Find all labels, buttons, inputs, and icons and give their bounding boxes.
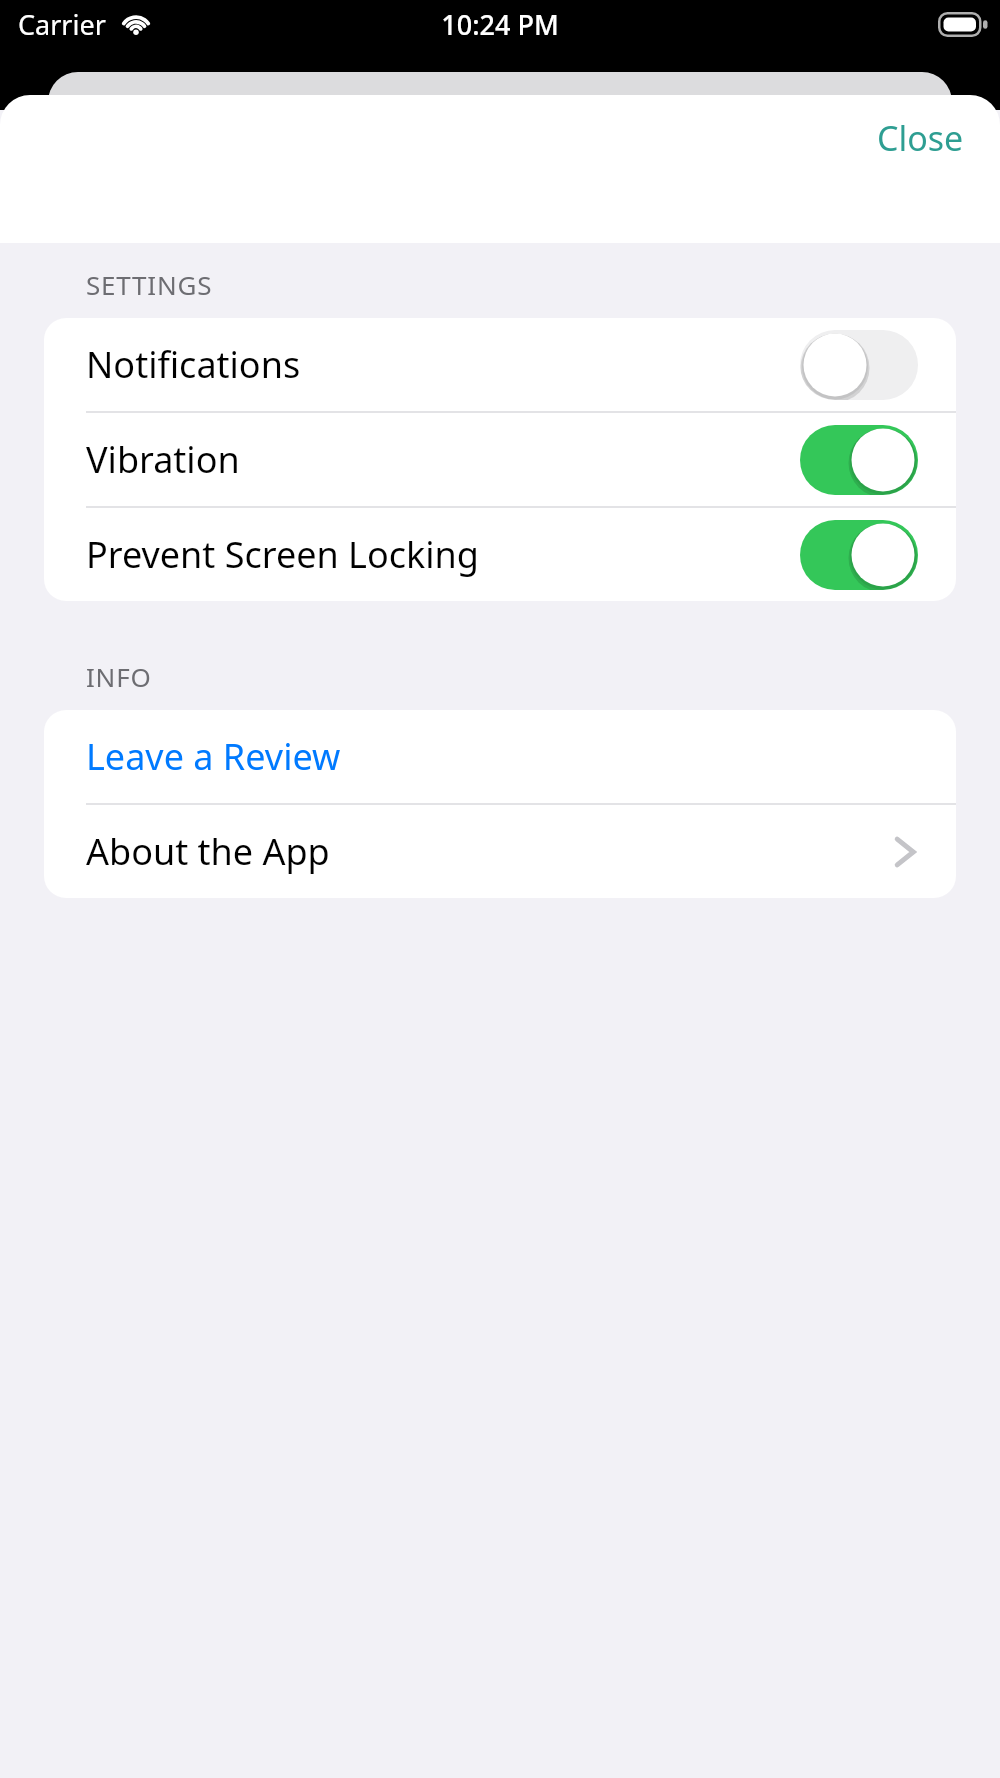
staticText: Vibration xyxy=(86,435,240,484)
staticText: SETTINGS xyxy=(86,267,213,302)
staticText: Leave a Review xyxy=(86,732,341,781)
staticText: Close xyxy=(877,115,964,161)
staticText: Notifications xyxy=(86,340,301,389)
staticText: Carrier xyxy=(18,6,106,43)
button[interactable]: Notifications toggle xyxy=(800,330,918,400)
button[interactable]: About the App xyxy=(44,805,956,898)
button[interactable]: Leave a Review xyxy=(44,710,956,803)
button[interactable]: Vibration xyxy=(44,413,956,506)
button[interactable]: Prevent Screen Locking toggle xyxy=(800,520,918,590)
button[interactable]: Notifications xyxy=(44,318,956,411)
staticText: 10:24 PM xyxy=(441,6,559,43)
button[interactable]: Close xyxy=(859,101,982,175)
staticText: Prevent Screen Locking xyxy=(86,530,479,579)
button[interactable]: Prevent Screen Locking xyxy=(44,508,956,601)
other: Open About the App xyxy=(892,829,918,875)
staticText: About the App xyxy=(86,827,330,876)
button[interactable]: Vibration toggle xyxy=(800,425,918,495)
staticText: INFO xyxy=(86,659,152,694)
